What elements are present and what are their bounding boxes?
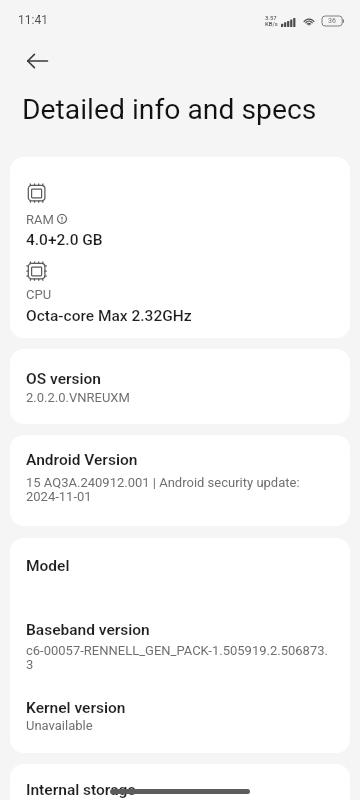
staticText: Kernel version (26, 699, 126, 717)
button[interactable]: Model (10, 538, 350, 602)
staticText: Baseband version (26, 621, 150, 639)
staticText: KB/s (265, 21, 278, 27)
button[interactable]: Internal storage (10, 764, 350, 800)
button[interactable]: Back (14, 38, 60, 84)
staticText: 15 AQ3A.240912.001 | Android security up… (26, 475, 300, 490)
staticText: Model (26, 557, 70, 575)
staticText: RAM (26, 212, 54, 227)
staticText: Detailed info and specs (22, 93, 317, 126)
button[interactable]: RAM (10, 157, 350, 249)
staticText: Unavailable (26, 718, 93, 733)
staticText: 11:41 (18, 13, 48, 27)
staticText: Octa-core Max 2.32GHz (26, 307, 192, 325)
button[interactable]: CPU (10, 249, 350, 338)
staticText: 3.57 (265, 15, 277, 21)
staticText: 3 (26, 657, 34, 672)
staticText: c6-00057-RENNELL_GEN_PACK-1.505919.2.506… (26, 643, 328, 658)
staticText: 2.0.2.0.VNREUXM (26, 390, 130, 405)
staticText: Internal storage (26, 781, 136, 799)
staticText: 4.0+2.0 GB (26, 231, 103, 249)
staticText: 2024-11-01 (26, 489, 92, 504)
button[interactable]: Android Version (10, 435, 350, 526)
button[interactable]: Kernel version (10, 680, 350, 753)
staticText: 36 (328, 17, 336, 25)
staticText: OS version (26, 370, 102, 388)
button[interactable]: Baseband version (10, 602, 350, 680)
staticText: CPU (26, 287, 52, 302)
staticText: Android Version (26, 451, 138, 469)
button[interactable]: OS version (10, 349, 350, 424)
